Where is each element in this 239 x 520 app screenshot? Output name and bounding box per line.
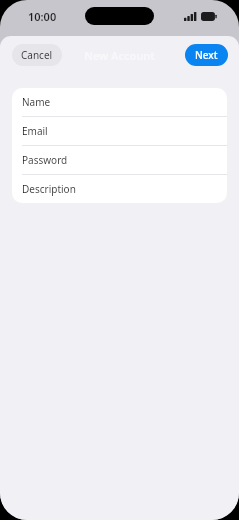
button[interactable]: Cancel <box>12 44 62 66</box>
button[interactable]: Email <box>12 117 227 145</box>
staticText: Password <box>22 153 68 167</box>
staticText: Description <box>22 182 76 196</box>
staticText: Cancel <box>21 48 53 62</box>
button[interactable]: Password <box>12 146 227 174</box>
button[interactable]: Next <box>185 44 228 66</box>
staticText: 10:00 <box>28 9 57 24</box>
button[interactable]: Description <box>12 175 227 203</box>
staticText: Name <box>22 95 51 109</box>
staticText: Email <box>22 124 48 138</box>
staticText: Next <box>195 48 218 62</box>
button[interactable]: Name <box>12 88 227 116</box>
staticText: New Account <box>84 48 155 63</box>
